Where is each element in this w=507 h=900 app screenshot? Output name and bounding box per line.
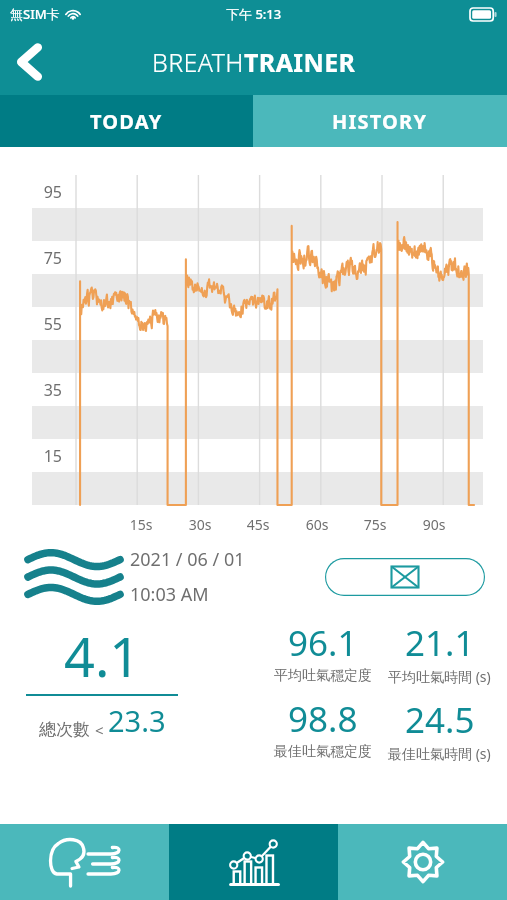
staticText: 60s (300, 515, 334, 534)
staticText: 75s (358, 515, 392, 534)
staticText: 96.1 (288, 619, 358, 667)
staticText: 10:03 AM (130, 582, 209, 607)
button[interactable]: Settings (338, 824, 507, 900)
staticText: 下午 5:13 (226, 5, 282, 23)
staticText: 最佳吐氣穩定度 (274, 743, 372, 761)
staticText: BREATH (152, 45, 244, 79)
button[interactable]: Back (0, 33, 58, 91)
staticText: 35 (34, 379, 62, 401)
staticText: 總次數 (39, 717, 95, 740)
staticText: 平均吐氣穩定度 (274, 667, 372, 685)
staticText: 21.1 (405, 619, 475, 667)
button[interactable]: HISTORY (253, 95, 507, 147)
staticText: 75 (34, 247, 62, 269)
staticText: 45s (241, 515, 275, 534)
staticText: < (95, 720, 108, 740)
staticText: 30s (183, 515, 217, 534)
staticText: 90s (417, 515, 451, 534)
staticText: 平均吐氣時間 (s) (388, 667, 491, 686)
staticText: 4.1 (64, 619, 141, 693)
staticText: TODAY (90, 108, 163, 135)
staticText: 23.3 (108, 701, 166, 740)
staticText: 15 (34, 445, 62, 467)
button[interactable]: Statistics (169, 824, 338, 900)
staticText: HISTORY (332, 108, 428, 135)
staticText: 無SIM卡 (10, 5, 60, 23)
staticText: TRAINER (244, 45, 356, 79)
staticText: 55 (34, 313, 62, 335)
staticText: 最佳吐氣時間 (s) (388, 744, 491, 763)
staticText: 15s (124, 515, 158, 534)
button[interactable]: Email report (325, 558, 485, 596)
staticText: 24.5 (405, 696, 475, 744)
staticText: 2021 / 06 / 01 (130, 547, 245, 572)
button[interactable]: Breathing exercise (0, 824, 169, 900)
staticText: 95 (34, 181, 62, 203)
staticText: 98.8 (288, 695, 358, 743)
button[interactable]: TODAY (0, 95, 253, 147)
